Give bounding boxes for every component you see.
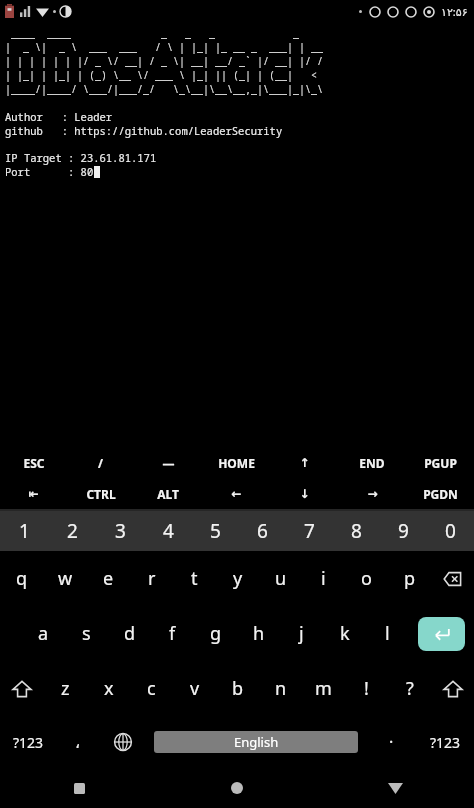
- staticText: 7: [304, 518, 315, 544]
- button[interactable]: 6: [239, 511, 286, 551]
- button[interactable]: Back: [316, 768, 474, 808]
- staticText: Author : Leader: [5, 110, 113, 124]
- button[interactable]: Shift: [0, 661, 44, 716]
- button[interactable]: English: [154, 731, 358, 753]
- staticText: ____ ____ _ _ _ _: [5, 26, 323, 40]
- button[interactable]: w: [44, 551, 87, 606]
- staticText: v: [190, 676, 200, 701]
- staticText: /: [98, 455, 103, 471]
- button[interactable]: ،: [57, 716, 99, 768]
- button[interactable]: ·: [365, 716, 417, 768]
- staticText: |____/|____/ \___/|___/_/ \_\__|\__\__,_…: [5, 82, 323, 96]
- button[interactable]: u: [259, 551, 302, 606]
- staticText: x: [104, 676, 114, 701]
- staticText: j: [299, 621, 304, 646]
- staticText: 8: [351, 518, 362, 544]
- staticText: n: [275, 676, 287, 701]
- button[interactable]: 2: [48, 511, 96, 551]
- staticText: y: [233, 566, 243, 591]
- button[interactable]: d: [108, 606, 151, 661]
- button[interactable]: ⇤: [0, 478, 67, 509]
- button[interactable]: 0: [427, 511, 474, 551]
- button[interactable]: i: [302, 551, 345, 606]
- staticText: ۱۲:۵۶: [441, 4, 468, 19]
- button[interactable]: o: [345, 551, 388, 606]
- button[interactable]: 1: [0, 511, 48, 551]
- staticText: —: [162, 455, 175, 471]
- staticText: ESC: [23, 455, 45, 471]
- button[interactable]: CTRL: [67, 478, 134, 509]
- button[interactable]: PGUP: [406, 447, 474, 478]
- button[interactable]: k: [323, 606, 366, 661]
- staticText: g: [210, 621, 222, 646]
- staticText: ←: [231, 487, 242, 501]
- button[interactable]: !: [345, 661, 388, 716]
- button[interactable]: r: [130, 551, 173, 606]
- staticText: PGDN: [423, 486, 458, 502]
- button[interactable]: t: [173, 551, 216, 606]
- button[interactable]: Recents: [0, 768, 158, 808]
- staticText: ?123: [13, 733, 44, 752]
- staticText: 1: [19, 518, 30, 544]
- staticText: p: [404, 566, 416, 591]
- button[interactable]: Home: [158, 768, 316, 808]
- button[interactable]: —: [134, 447, 202, 478]
- button[interactable]: ↓: [270, 478, 338, 509]
- staticText: ?: [406, 676, 414, 701]
- button[interactable]: ?: [388, 661, 431, 716]
- button[interactable]: e: [87, 551, 130, 606]
- button[interactable]: a: [22, 606, 65, 661]
- button[interactable]: →: [338, 478, 406, 509]
- button[interactable]: j: [280, 606, 323, 661]
- button[interactable]: 3: [96, 511, 144, 551]
- button[interactable]: Shift: [431, 661, 474, 716]
- button[interactable]: ESC: [0, 447, 67, 478]
- staticText: ،: [75, 733, 81, 752]
- button[interactable]: ?123: [0, 716, 57, 768]
- button[interactable]: 9: [380, 511, 427, 551]
- button[interactable]: s: [65, 606, 108, 661]
- staticText: ·: [389, 731, 394, 753]
- button[interactable]: m: [302, 661, 345, 716]
- button[interactable]: ↑: [270, 447, 338, 478]
- button[interactable]: 5: [192, 511, 239, 551]
- button[interactable]: v: [173, 661, 216, 716]
- staticText: IP Target : 23.61.81.171: [5, 151, 157, 165]
- staticText: →: [367, 487, 378, 501]
- button[interactable]: Backspace: [431, 551, 474, 606]
- staticText: t: [191, 566, 198, 591]
- button[interactable]: y: [216, 551, 259, 606]
- button[interactable]: f: [151, 606, 194, 661]
- button[interactable]: g: [194, 606, 237, 661]
- button[interactable]: 8: [333, 511, 380, 551]
- staticText: d: [124, 621, 136, 646]
- button[interactable]: q: [0, 551, 44, 606]
- button[interactable]: Enter: [418, 617, 465, 651]
- staticText: 9: [398, 518, 409, 544]
- button[interactable]: h: [237, 606, 280, 661]
- staticText: !: [364, 676, 369, 701]
- button[interactable]: 4: [144, 511, 192, 551]
- staticText: ↓: [299, 487, 310, 501]
- button[interactable]: 7: [286, 511, 333, 551]
- staticText: 0: [445, 518, 456, 544]
- button[interactable]: x: [87, 661, 130, 716]
- button[interactable]: c: [130, 661, 173, 716]
- button[interactable]: l: [366, 606, 409, 661]
- staticText: HOME: [218, 455, 255, 471]
- staticText: | _ \| _ \ ___ ___ / \ | |_| |_ __ _ ___…: [5, 40, 323, 54]
- button[interactable]: HOME: [202, 447, 270, 478]
- staticText: ⇤: [28, 487, 39, 501]
- button[interactable]: PGDN: [406, 478, 474, 509]
- button[interactable]: END: [338, 447, 406, 478]
- button[interactable]: z: [44, 661, 87, 716]
- button[interactable]: n: [259, 661, 302, 716]
- button[interactable]: /: [67, 447, 134, 478]
- button[interactable]: b: [216, 661, 259, 716]
- button[interactable]: ALT: [134, 478, 202, 509]
- button[interactable]: p: [388, 551, 431, 606]
- button[interactable]: ←: [202, 478, 270, 509]
- staticText: i: [321, 566, 326, 591]
- button[interactable]: Change language: [99, 716, 146, 768]
- button[interactable]: ?123: [417, 716, 474, 768]
